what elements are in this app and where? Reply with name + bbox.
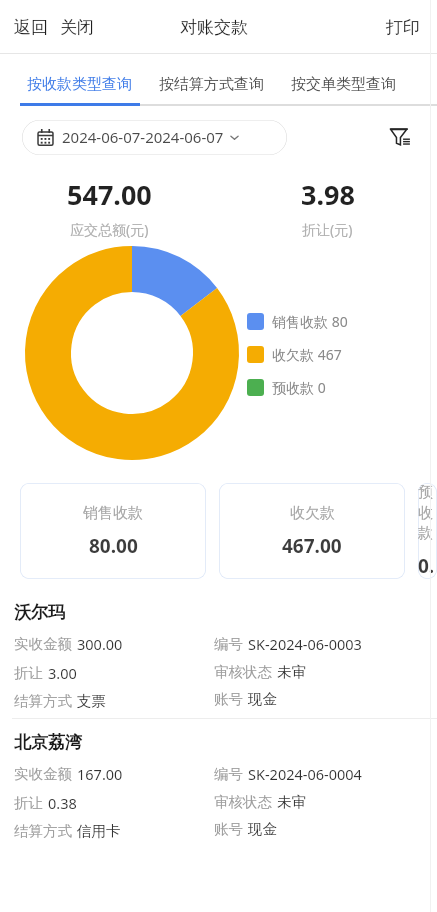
button[interactable]: 2024-06-07-2024-06-07 [22,119,254,155]
staticText: SK-2024-06-0004 [248,764,362,784]
staticText: 关闭 [60,17,94,38]
staticText: 3.98 [301,176,355,213]
staticText: 现金 [248,820,277,838]
staticText: 折让(元) [302,220,353,239]
button[interactable]: 销售收款 [20,483,206,579]
staticText: 对账交款 [180,17,248,38]
button[interactable]: 返回 [11,11,51,44]
staticText: 0.38 [48,793,77,813]
button[interactable]: 关闭 [57,11,97,44]
staticText: 审核状态 [214,663,272,681]
staticText: 结算方式 [14,822,72,840]
staticText: 547.00 [67,176,152,213]
staticText: SK-2024-06-0003 [248,634,362,654]
staticText: 编号 [214,635,243,653]
staticText: 支票 [77,692,106,710]
staticText: 折让 [14,664,43,682]
staticText: 80.00 [89,533,138,559]
staticText: 167.00 [77,764,123,784]
button[interactable]: 收欠款 [219,483,405,579]
staticText: 销售收款 80 [272,312,348,331]
button[interactable]: 按结算方式查询 [157,72,266,97]
staticText: 按交单类型查询 [291,75,396,94]
staticText: 未审 [277,663,306,681]
staticText: 结算方式 [14,692,72,710]
button[interactable]: 打印 [383,11,423,44]
staticText: 现金 [248,690,277,708]
staticText: 销售收款 [83,504,143,523]
staticText: 应交总额(元) [70,220,149,239]
staticText: 信用卡 [77,822,121,840]
staticText: 收欠款 [290,504,335,523]
button[interactable]: 预收款 [418,483,437,579]
staticText: 返回 [14,17,48,38]
staticText: 收欠款 467 [272,345,342,364]
staticText: 0.00 [418,553,437,579]
staticText: 467.00 [282,533,342,559]
staticText: 实收金额 [14,765,72,783]
staticText: 预收款 [418,483,437,543]
staticText: 审核状态 [214,793,272,811]
staticText: 编号 [214,765,243,783]
staticText: 北京荔湾 [14,732,82,753]
staticText: 实收金额 [14,635,72,653]
staticText: 沃尔玛 [14,602,65,623]
button[interactable]: 北京荔湾 [0,732,437,840]
button[interactable]: 按交单类型查询 [289,72,398,97]
button[interactable]: 按收款类型查询 [25,72,134,97]
staticText: 2024-06-07-2024-06-07 [62,127,224,147]
staticText: 3.00 [48,663,77,683]
staticText: 打印 [386,17,420,38]
button[interactable]: Filter [383,120,417,154]
staticText: 账号 [214,820,243,838]
staticText: 按结算方式查询 [159,75,264,94]
staticText: 预收款 0 [272,378,326,397]
button[interactable]: 沃尔玛 [0,602,437,710]
staticText: 未审 [277,793,306,811]
staticText: 折让 [14,794,43,812]
staticText: 账号 [214,690,243,708]
staticText: 按收款类型查询 [27,75,132,94]
staticText: 300.00 [77,634,123,654]
